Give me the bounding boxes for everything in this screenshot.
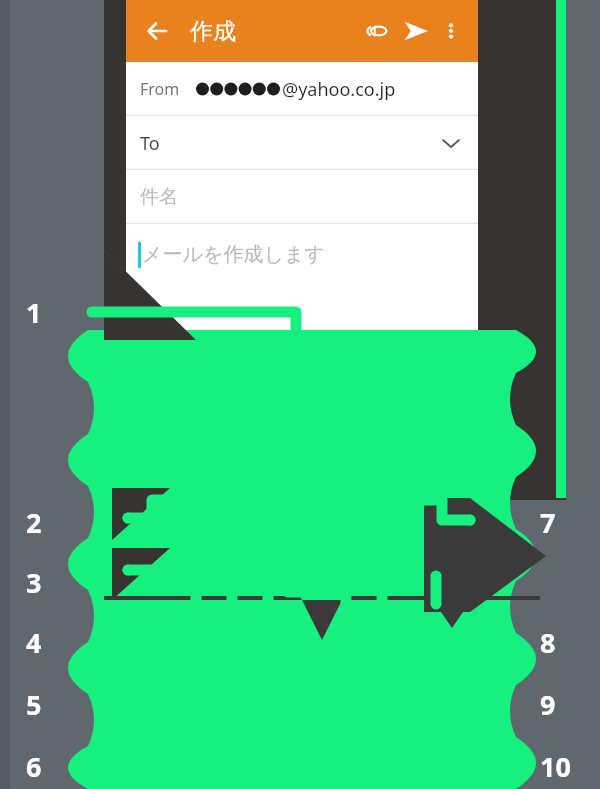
staticText: 7	[540, 504, 556, 540]
button[interactable]: あ	[126, 544, 184, 596]
button[interactable]: s	[162, 444, 198, 494]
staticText: あ	[135, 560, 153, 581]
staticText: メールを作成します	[142, 242, 325, 267]
staticText: 2	[26, 504, 42, 540]
staticText: 作成	[190, 17, 236, 46]
button[interactable]: 戻る	[140, 13, 176, 49]
staticText: @yahoo.co.jp	[282, 77, 396, 102]
button[interactable]: a	[126, 444, 162, 494]
button[interactable]: Backspace	[425, 494, 478, 544]
button[interactable]: Enter	[416, 544, 478, 596]
staticText: 4	[26, 624, 42, 660]
other: Enter	[434, 560, 460, 580]
staticText: A1	[155, 559, 176, 582]
button[interactable]: To	[126, 116, 478, 170]
button[interactable]: メールを作成します	[126, 224, 478, 316]
staticText: 8	[540, 624, 556, 660]
button[interactable]: m	[390, 494, 425, 544]
button[interactable]: Shift	[126, 494, 180, 544]
staticText: 件名	[140, 185, 178, 209]
button[interactable]: 添付	[360, 13, 396, 49]
button[interactable]: 送信	[396, 11, 436, 51]
staticText: From	[140, 78, 180, 100]
staticText: 6	[26, 748, 42, 784]
button[interactable]: 件名	[126, 170, 478, 224]
button[interactable]: その他のオプション	[436, 16, 466, 46]
